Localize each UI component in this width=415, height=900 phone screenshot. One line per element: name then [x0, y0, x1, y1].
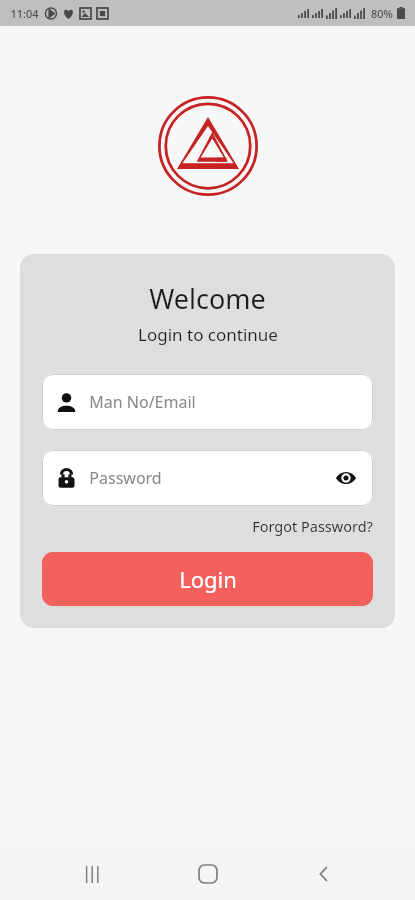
staticText: Login	[179, 564, 237, 594]
staticText: Login to continue	[138, 323, 278, 346]
button[interactable]: Show password	[333, 465, 359, 491]
staticText: Password	[89, 467, 162, 489]
button[interactable]: Man No/Email	[42, 374, 373, 430]
button[interactable]: Home	[182, 848, 234, 900]
button[interactable]: Password	[42, 450, 373, 506]
staticText: Man No/Email	[89, 391, 196, 413]
button[interactable]: Login	[42, 552, 373, 606]
staticText: Forgot Password?	[252, 516, 373, 536]
staticText: Welcome	[149, 280, 266, 317]
staticText: 11:04	[10, 6, 39, 21]
button[interactable]: Back	[298, 848, 350, 900]
button[interactable]: Forgot Password?	[42, 516, 373, 536]
staticText: 80%	[371, 6, 393, 21]
button[interactable]: Recents	[65, 848, 117, 900]
